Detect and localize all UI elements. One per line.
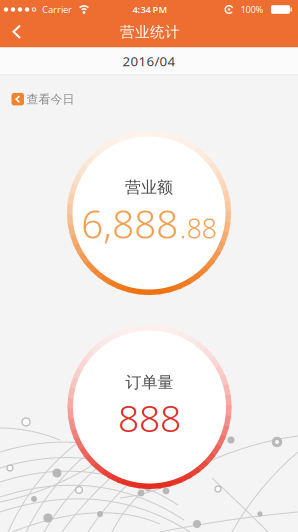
staticText: 6,888 [81, 198, 178, 249]
staticText: 营业统计 [120, 23, 180, 41]
staticText: 100% [240, 3, 263, 16]
staticText: Carrier [42, 3, 72, 16]
button[interactable]: Back [0, 19, 34, 47]
staticText: 订单量 [125, 373, 173, 392]
staticText: 4:34 PM [132, 3, 167, 16]
staticText: 营业额 [125, 178, 173, 197]
staticText: 2016/04 [122, 52, 175, 70]
staticText: 888 [118, 393, 181, 442]
button[interactable]: 查看今日 [11, 92, 74, 106]
button[interactable]: 2016/04 [0, 47, 298, 74]
staticText: 查看今日 [26, 92, 74, 106]
staticText: .88 [180, 210, 217, 246]
